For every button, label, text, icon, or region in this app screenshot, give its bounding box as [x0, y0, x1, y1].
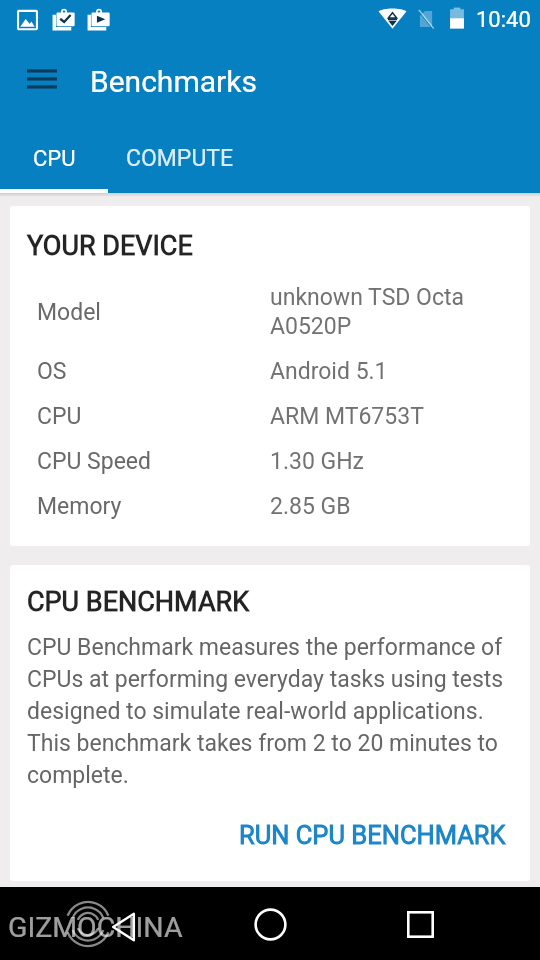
staticText: CPU: [33, 146, 76, 172]
staticText: unknown TSD Octa A0520P: [270, 284, 464, 340]
staticText: 10:40: [476, 7, 531, 33]
staticText: 1.30 GHz: [270, 448, 365, 475]
staticText: CPU Benchmark measures the performance o…: [27, 634, 512, 789]
staticText: GIZMOCHINA: [8, 911, 183, 944]
staticText: Memory: [37, 493, 270, 520]
staticText: YOUR DEVICE: [27, 230, 193, 262]
staticText: Model: [37, 299, 270, 326]
staticText: RUN CPU BENCHMARK: [239, 820, 506, 850]
staticText: Android 5.1: [270, 358, 388, 385]
staticText: OS: [37, 358, 270, 385]
staticText: CPU Speed: [37, 448, 270, 475]
staticText: COMPUTE: [126, 145, 234, 172]
staticText: 2.85 GB: [270, 493, 351, 520]
button[interactable]: RUN CPU BENCHMARK: [233, 812, 512, 858]
button[interactable]: CPU: [0, 124, 108, 193]
button[interactable]: Recent apps: [389, 893, 451, 955]
staticText: CPU BENCHMARK: [27, 586, 250, 618]
button[interactable]: Back: [92, 896, 154, 958]
staticText: ARM MT6753T: [270, 403, 424, 430]
staticText: Benchmarks: [90, 64, 257, 99]
button[interactable]: Home: [239, 893, 301, 955]
button[interactable]: COMPUTE: [108, 124, 252, 193]
staticText: CPU: [37, 403, 270, 430]
button[interactable]: Open navigation drawer: [13, 52, 71, 110]
